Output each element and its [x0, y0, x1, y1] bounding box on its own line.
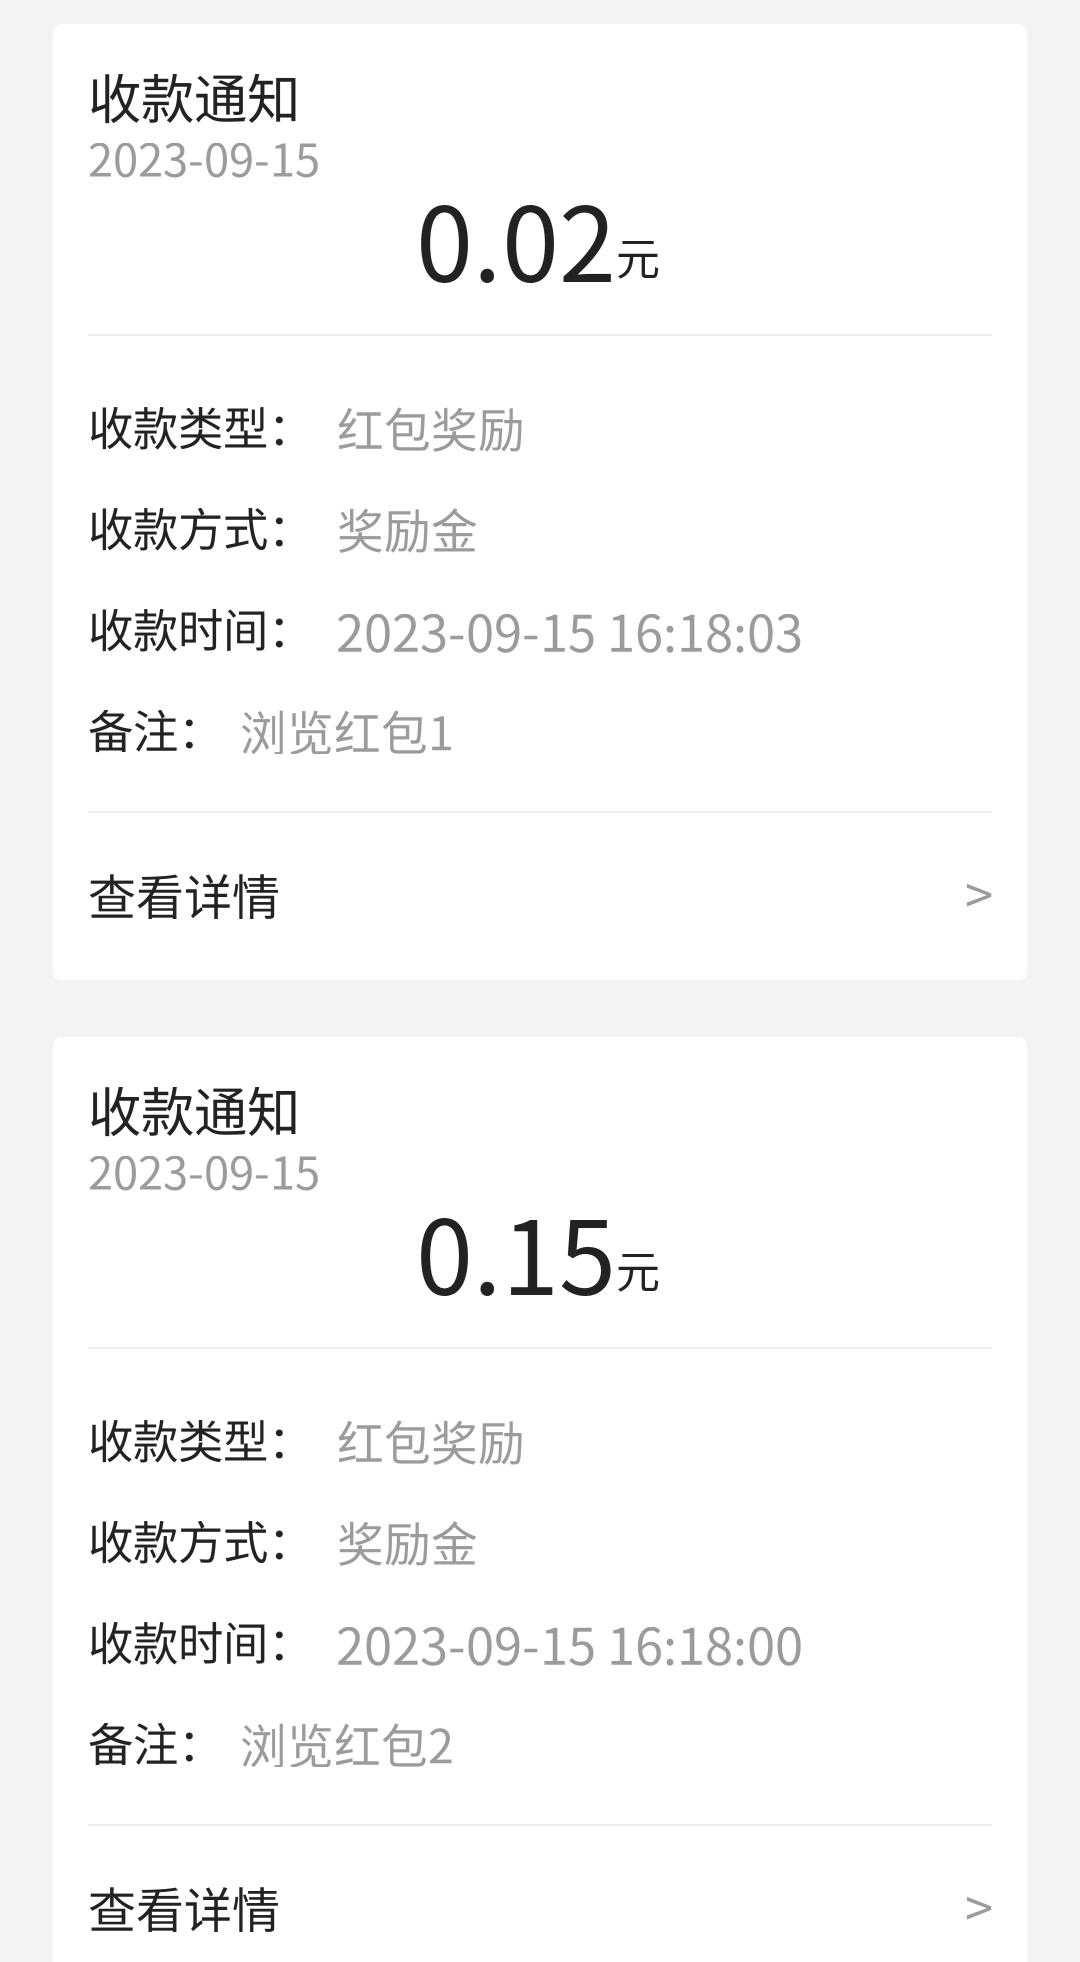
staticText: 2023-09-15 — [88, 124, 320, 190]
button[interactable]: 查看详情 — [53, 1037, 1027, 1962]
staticText: 收款方式： — [88, 494, 313, 560]
staticText: 收款通知 — [88, 1070, 300, 1147]
staticText: 收款时间： — [88, 595, 313, 661]
staticText: 元 — [616, 1237, 660, 1301]
staticText: 备注： — [88, 696, 223, 762]
staticText: 查看详情 — [88, 859, 280, 928]
staticText: 2023-09-15 16:18:00 — [336, 1606, 803, 1679]
staticText: 0.02 — [416, 163, 616, 312]
staticText: 红包奖励 — [337, 393, 525, 461]
staticText: 浏览红包2 — [240, 1709, 454, 1777]
staticText: 收款方式： — [88, 1507, 313, 1573]
staticText: 收款类型： — [88, 393, 313, 459]
staticText: 元 — [616, 224, 660, 288]
staticText: 2023-09-15 — [88, 1137, 320, 1203]
staticText: 奖励金 — [337, 494, 478, 562]
staticText: 收款通知 — [88, 57, 300, 134]
staticText: > — [965, 855, 993, 928]
staticText: 备注： — [88, 1709, 223, 1775]
staticText: > — [965, 1868, 993, 1941]
button[interactable]: 查看详情 — [53, 24, 1027, 980]
staticText: 奖励金 — [337, 1507, 478, 1575]
staticText: 收款时间： — [88, 1608, 313, 1674]
staticText: 红包奖励 — [337, 1406, 525, 1474]
staticText: 浏览红包1 — [240, 696, 454, 764]
staticText: 2023-09-15 16:18:03 — [336, 593, 803, 666]
staticText: 收款类型： — [88, 1406, 313, 1472]
staticText: 0.15 — [416, 1176, 616, 1325]
staticText: 查看详情 — [88, 1872, 280, 1941]
